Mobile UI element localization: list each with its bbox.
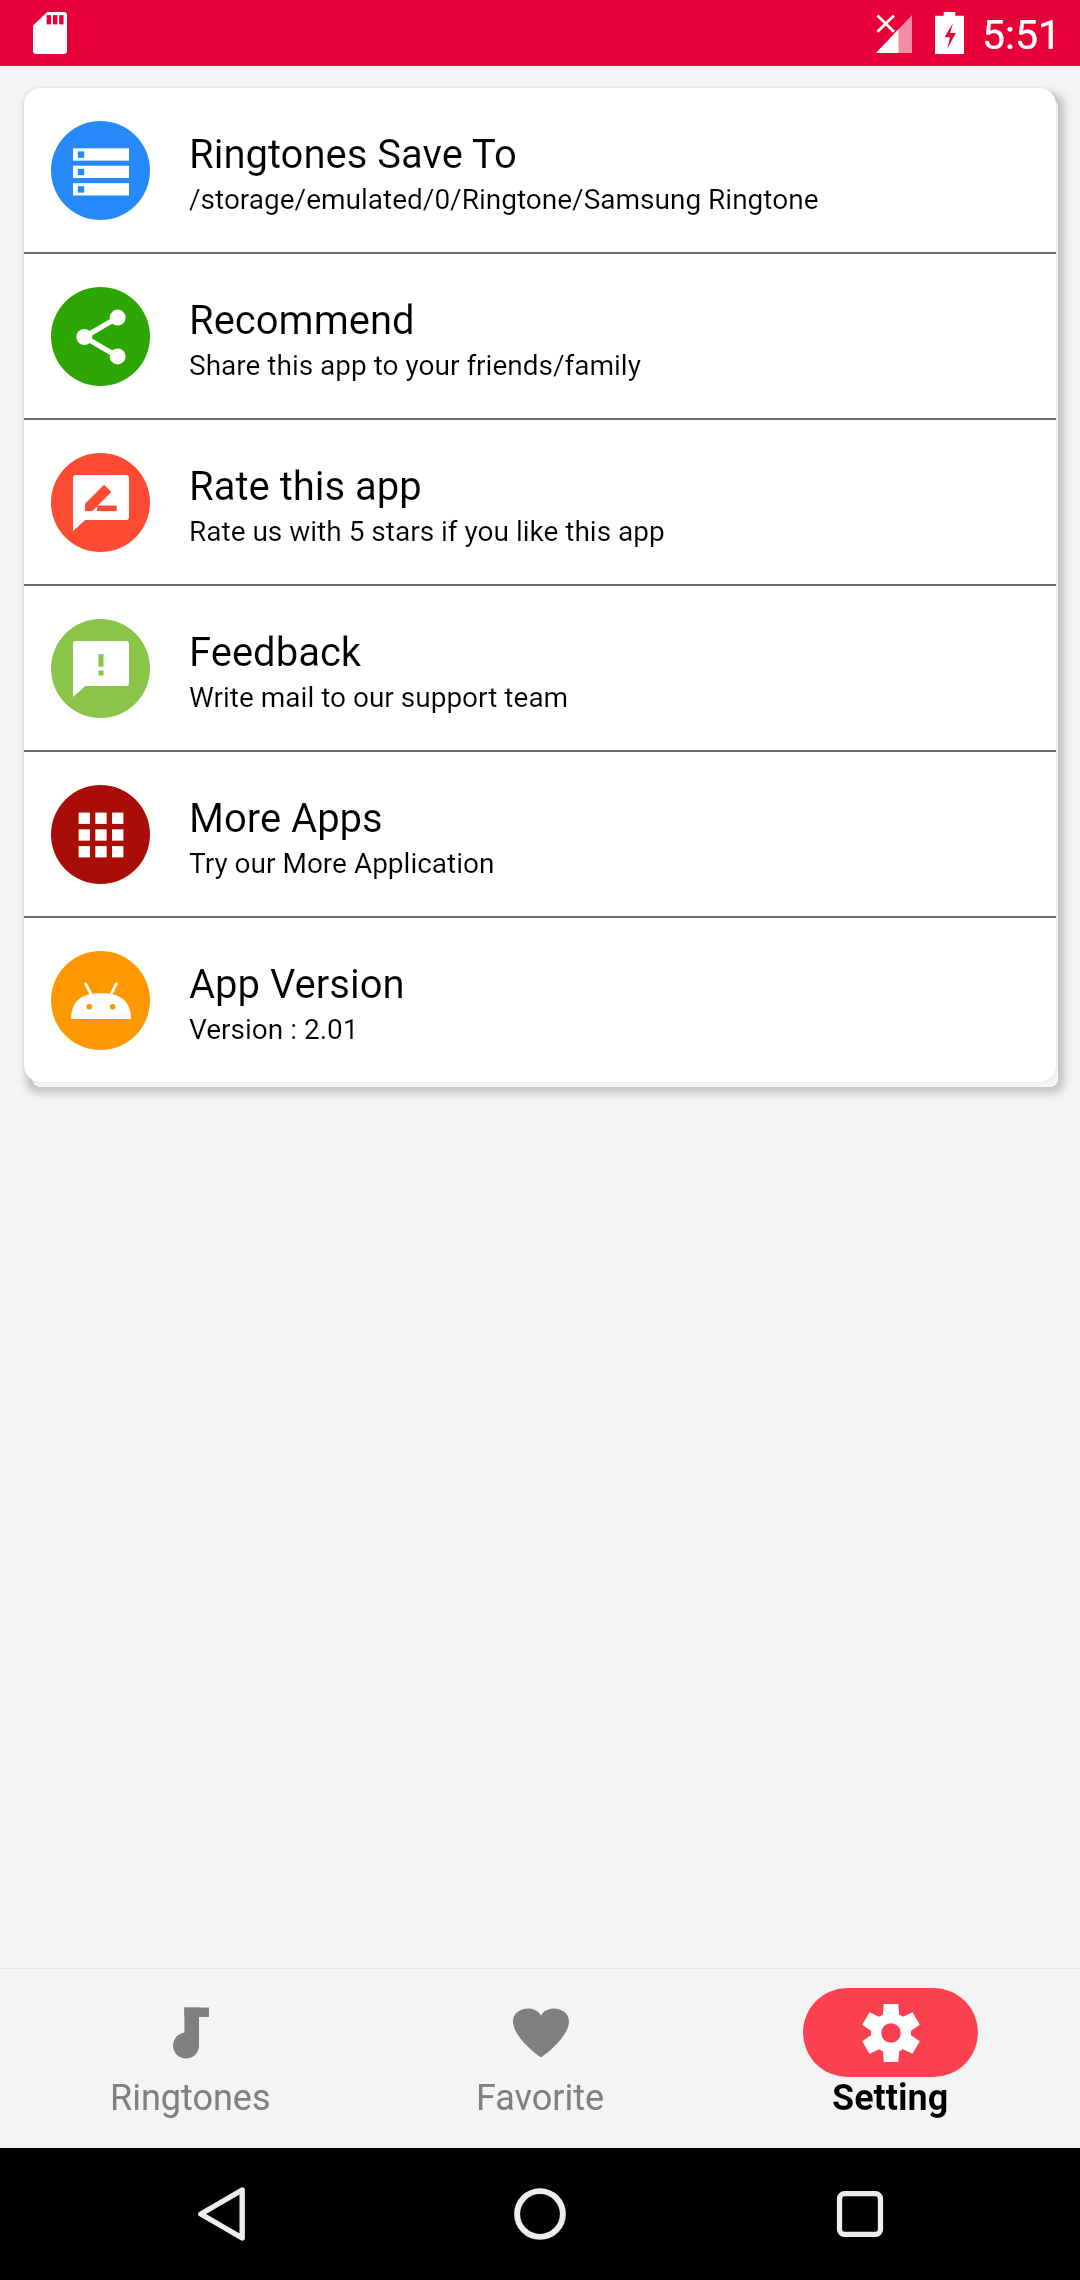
button[interactable]: Ringtones (15, 1969, 365, 2148)
button[interactable]: Recommend (24, 254, 1056, 418)
staticText: Rate this app (189, 463, 422, 510)
staticText: 5:51 (982, 11, 1062, 59)
button[interactable]: Home (500, 2174, 580, 2254)
staticText: Recommend (189, 297, 415, 344)
staticText: Write mail to our support team (189, 681, 569, 714)
staticText: /storage/emulated/0/Ringtone/Samsung Rin… (189, 183, 819, 216)
button[interactable]: Ringtones Save To (24, 88, 1056, 252)
staticText: Ringtones (110, 2077, 271, 2119)
staticText: More Apps (189, 795, 383, 842)
button[interactable]: Back (181, 2174, 261, 2254)
staticText: Favorite (476, 2077, 605, 2119)
button[interactable]: Feedback (24, 586, 1056, 750)
staticText: Version : 2.01 (189, 1013, 359, 1046)
staticText: Rate us with 5 stars if you like this ap… (189, 515, 665, 548)
staticText: Try our More Application (189, 847, 495, 880)
staticText: Feedback (189, 629, 362, 676)
button[interactable]: Favorite (365, 1969, 715, 2148)
button[interactable]: Setting (715, 1969, 1065, 2148)
staticText: Share this app to your friends/family (189, 349, 641, 382)
button[interactable]: Rate this app (24, 420, 1056, 584)
staticText: App Version (189, 961, 405, 1008)
staticText: Ringtones Save To (189, 131, 517, 178)
button[interactable]: More Apps (24, 752, 1056, 916)
button[interactable]: Recents (820, 2174, 900, 2254)
button[interactable]: App Version (24, 918, 1056, 1082)
staticText: Setting (832, 2077, 949, 2119)
